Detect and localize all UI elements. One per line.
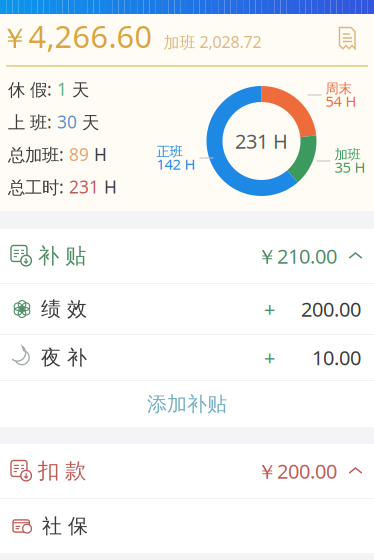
staticText: ￥	[0, 21, 28, 56]
staticText: 30	[57, 110, 77, 133]
button[interactable]: Payslip detail	[334, 25, 359, 50]
staticText: +	[264, 296, 275, 322]
button[interactable]: 补 贴	[0, 229, 374, 283]
staticText: :	[59, 175, 69, 198]
staticText: H	[89, 143, 107, 166]
staticText: 加班 2,028.72	[163, 31, 261, 52]
staticText: H	[99, 175, 117, 198]
staticText: 231	[69, 175, 99, 198]
staticText: 周末	[325, 80, 351, 97]
staticText: 正班	[156, 143, 182, 160]
button[interactable]: 绩 效	[0, 284, 374, 334]
staticText: +	[264, 344, 275, 371]
button[interactable]: 添加补贴	[0, 381, 374, 427]
staticText: 添加补贴	[147, 392, 227, 416]
staticText: 加班	[334, 146, 360, 163]
staticText: 天	[77, 112, 99, 133]
button[interactable]: 扣 款	[0, 444, 374, 498]
staticText: 社 保	[42, 514, 88, 538]
staticText: 35 H	[334, 157, 365, 177]
staticText: 54 H	[325, 91, 356, 111]
staticText: 200.00	[301, 296, 361, 322]
staticText: 天	[67, 79, 89, 101]
button[interactable]: 社 保	[0, 499, 374, 553]
staticText: 总工时	[8, 177, 59, 198]
staticText: 上 班	[8, 112, 47, 133]
staticText: 夜 补	[41, 345, 87, 370]
staticText: :	[47, 77, 57, 100]
staticText: ￥210.00	[257, 243, 337, 269]
staticText: 总加班	[8, 145, 59, 166]
staticText: 扣 款	[38, 458, 86, 484]
staticText: 89	[69, 143, 89, 166]
button[interactable]: 夜 补	[0, 335, 374, 380]
staticText: :	[59, 143, 69, 166]
staticText: 补 贴	[38, 243, 86, 269]
staticText: :	[47, 110, 57, 133]
staticText: 231 H	[235, 128, 288, 154]
staticText: ￥200.00	[257, 458, 337, 484]
staticText: 4,266.60	[28, 16, 152, 56]
staticText: 10.00	[312, 344, 361, 371]
staticText: 142 H	[156, 154, 195, 174]
staticText: 休 假	[8, 79, 47, 101]
staticText: 绩 效	[41, 297, 87, 321]
staticText: 1	[57, 77, 67, 100]
